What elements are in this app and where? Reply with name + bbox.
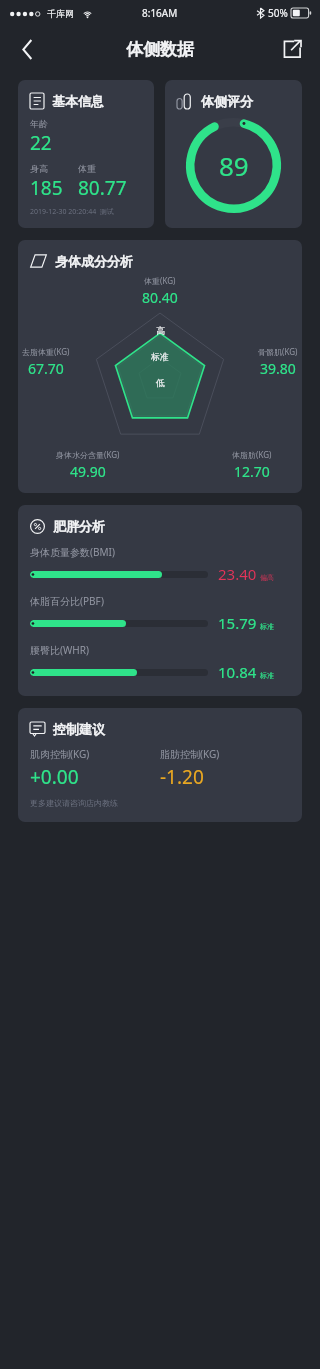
- staticText: 身体质量参数(BMI): [30, 545, 115, 559]
- staticText: 体脂百分比(PBF): [30, 594, 104, 608]
- staticText: 标准: [260, 622, 274, 631]
- staticText: 50%: [268, 6, 288, 20]
- staticText: 脂肪控制(KG): [160, 747, 290, 761]
- staticText: 80.77: [78, 175, 127, 201]
- staticText: 12.70: [234, 462, 270, 481]
- staticText: 体重: [78, 163, 96, 174]
- staticText: 80.40: [142, 288, 178, 307]
- staticText: 体侧数据: [126, 39, 194, 60]
- staticText: +0.00: [30, 764, 160, 790]
- staticText: 身体成分分析: [55, 253, 133, 269]
- button[interactable]: 肥胖分析: [18, 505, 302, 696]
- staticText: 185: [30, 175, 78, 201]
- staticText: 体重(KG): [144, 275, 176, 286]
- button[interactable]: 身体成分分析: [18, 240, 302, 493]
- staticText: 10.84: [218, 662, 257, 682]
- staticText: 标准: [260, 671, 274, 680]
- staticText: 22: [30, 130, 52, 156]
- staticText: 控制建议: [53, 721, 105, 737]
- staticText: 67.70: [28, 359, 64, 378]
- staticText: 15.79: [218, 613, 257, 633]
- staticText: 腰臀比(WHR): [30, 643, 89, 657]
- staticText: 身体水分含量(KG): [56, 449, 120, 460]
- staticText: 2019-12-30 20:20:44 测试: [30, 207, 114, 217]
- button[interactable]: Back: [8, 30, 46, 68]
- staticText: 体脂肪(KG): [232, 449, 272, 460]
- staticText: 23.40: [218, 564, 257, 584]
- staticText: 肥胖分析: [53, 518, 105, 534]
- staticText: 骨骼肌(KG): [258, 346, 298, 357]
- staticText: 8:16AM: [142, 6, 178, 20]
- staticText: 39.80: [260, 359, 296, 378]
- staticText: 年龄: [30, 118, 48, 129]
- staticText: 基本信息: [52, 93, 104, 109]
- button[interactable]: 控制建议: [18, 708, 302, 822]
- staticText: 标准: [151, 351, 169, 362]
- staticText: 去脂体重(KG): [22, 346, 70, 357]
- staticText: -1.20: [160, 764, 290, 790]
- staticText: 体侧评分: [201, 93, 253, 109]
- button[interactable]: 基本信息: [18, 80, 154, 228]
- staticText: 偏高: [260, 573, 274, 582]
- button[interactable]: Share: [274, 31, 310, 67]
- staticText: 身高: [30, 163, 78, 174]
- staticText: 千库网: [47, 8, 74, 19]
- staticText: 49.90: [70, 462, 106, 481]
- button[interactable]: 体侧评分: [165, 80, 302, 228]
- staticText: 低: [156, 377, 165, 388]
- staticText: 89: [219, 148, 249, 183]
- staticText: 肌肉控制(KG): [30, 747, 160, 761]
- staticText: 更多建议请咨询店内教练: [30, 798, 118, 808]
- staticText: 高: [156, 325, 165, 336]
